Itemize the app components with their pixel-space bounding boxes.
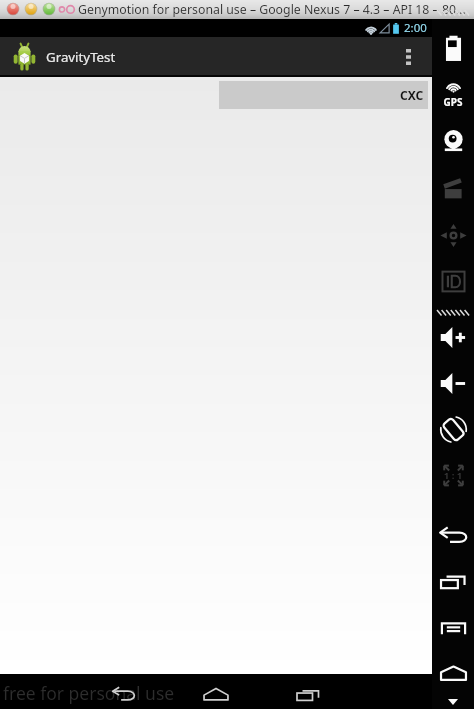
button[interactable]: Home [438,656,468,690]
button[interactable]: Navigate [438,218,468,252]
button[interactable]: Home [191,676,241,709]
button[interactable]: Back [99,676,149,709]
button[interactable]: Battery [438,31,468,65]
button[interactable]: Rotate [438,412,468,446]
staticText: CXC [400,87,424,103]
staticText: 1 : 1 [438,469,468,482]
staticText: 2:00 [404,20,427,36]
staticText: Genymotion for personal use – Google Nex… [78,1,466,18]
button[interactable]: Identifiers [438,264,468,298]
staticText: free for personal use [3,681,175,705]
button[interactable]: Actual size [438,458,468,492]
button[interactable]: Camera [438,124,468,158]
button[interactable]: CXC [219,81,428,109]
button[interactable]: Screen recorder [438,171,468,205]
button[interactable]: Menu [438,611,468,645]
staticText: GravityTest [46,48,116,66]
staticText: GPS [438,95,468,109]
button[interactable]: Back [438,518,468,552]
button[interactable]: Recent apps [283,676,333,709]
button[interactable]: Collapse toolbar [441,695,465,709]
button[interactable]: Recents [438,564,468,598]
button[interactable]: More options [392,37,424,77]
button[interactable]: Volume down [438,366,468,400]
button[interactable]: GPS [438,77,468,111]
button[interactable]: Volume up [438,320,468,354]
